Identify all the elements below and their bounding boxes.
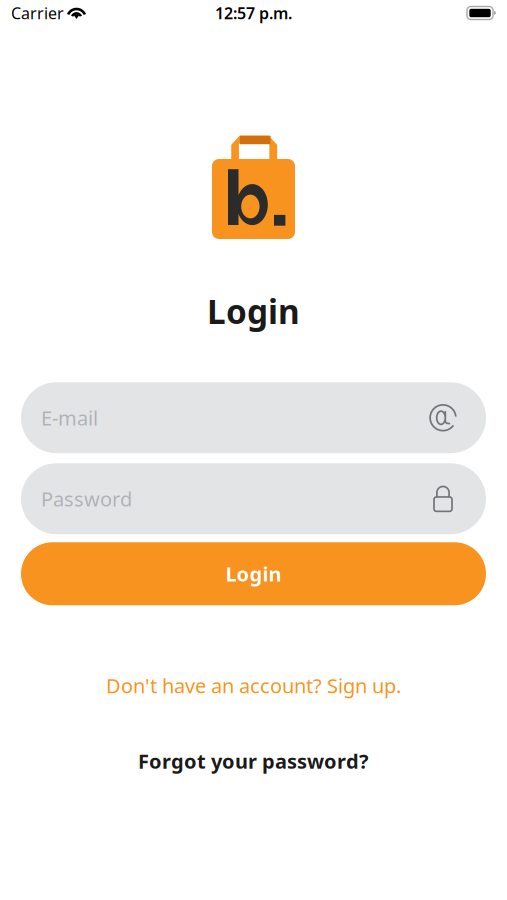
staticText: Login	[207, 289, 300, 333]
button[interactable]: Forgot your password?	[138, 748, 369, 774]
staticText: E-mail	[41, 404, 98, 431]
staticText: Forgot your password?	[138, 748, 369, 774]
staticText: Carrier	[11, 2, 64, 24]
button[interactable]: Don't have an account? Sign up.	[106, 672, 401, 699]
staticText: 12:57 p.m.	[215, 2, 292, 24]
staticText: Password	[41, 485, 132, 512]
staticText: Don't have an account? Sign up.	[106, 672, 401, 699]
staticText: Login	[225, 560, 281, 587]
button[interactable]: Login	[21, 542, 486, 605]
